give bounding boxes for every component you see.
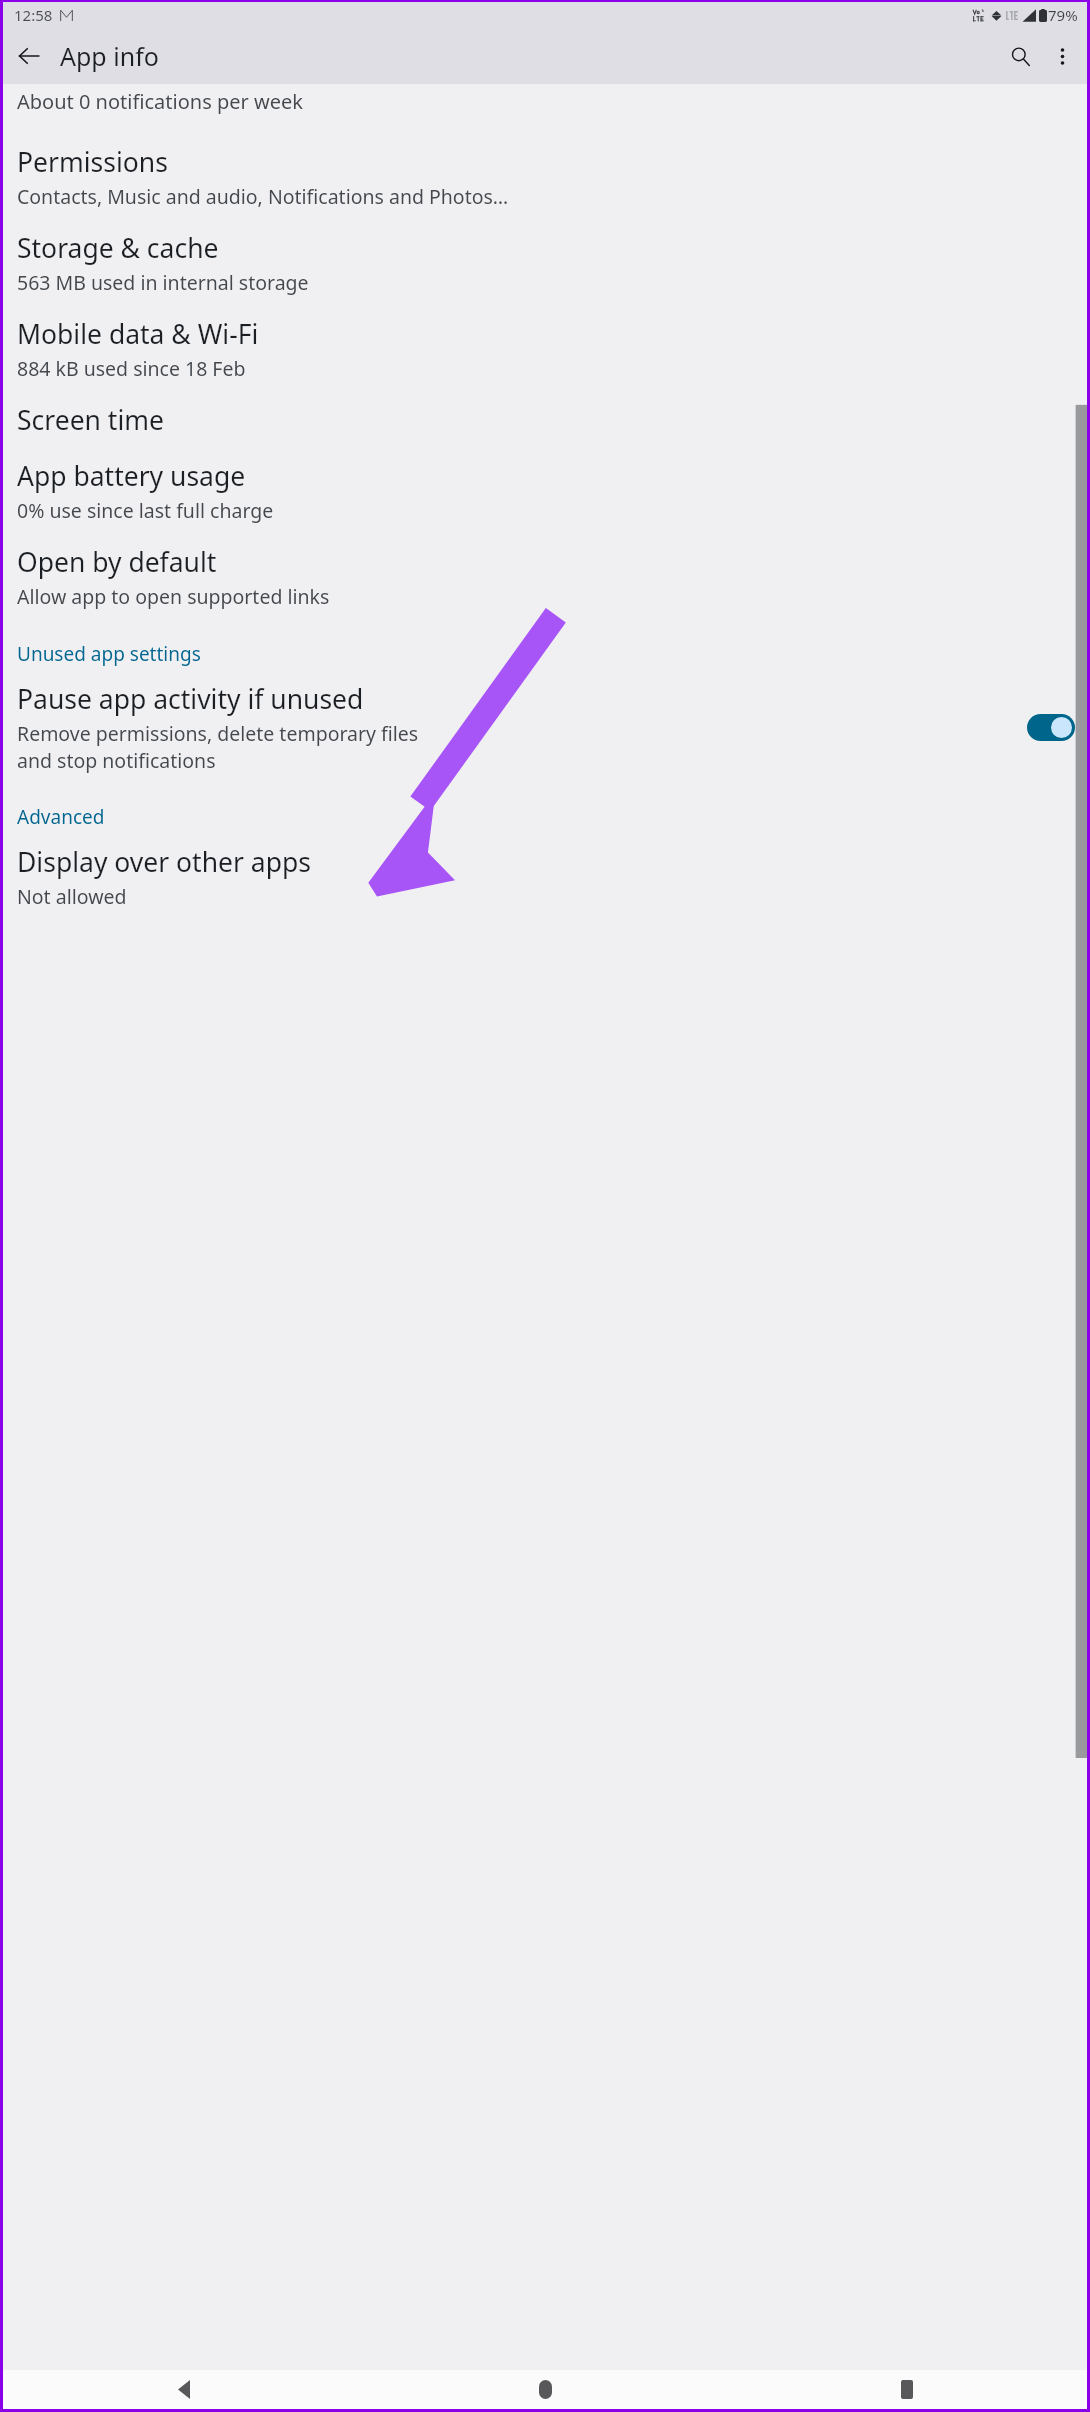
staticText: Storage & cache xyxy=(17,230,219,266)
staticText: 884 kB used since 18 Feb xyxy=(17,355,246,382)
button[interactable]: Pause app activity if unused xyxy=(1027,714,1075,741)
staticText: Pause app activity if unused xyxy=(17,681,364,717)
button[interactable]: Mobile data & Wi-Fi xyxy=(3,306,1087,392)
button[interactable]: Back xyxy=(8,35,50,77)
staticText: Display over other apps xyxy=(17,844,311,880)
button[interactable]: Recent apps xyxy=(726,2370,1087,2409)
staticText: 12:58 xyxy=(14,5,53,25)
staticText: App battery usage xyxy=(17,458,246,494)
staticText: Mobile data & Wi-Fi xyxy=(17,316,259,352)
button[interactable]: Screen time xyxy=(3,392,1087,448)
staticText: Not allowed xyxy=(17,883,127,910)
button[interactable]: Open by default xyxy=(3,534,1087,620)
button[interactable]: App battery usage xyxy=(3,448,1087,534)
button[interactable]: Storage & cache xyxy=(3,220,1087,306)
staticText: Advanced xyxy=(17,804,105,830)
button[interactable]: More options xyxy=(1041,35,1083,77)
staticText: Open by default xyxy=(17,544,217,580)
staticText: 563 MB used in internal storage xyxy=(17,269,309,296)
staticText: Allow app to open supported links xyxy=(17,583,330,610)
staticText: Unused app settings xyxy=(17,641,201,667)
button[interactable]: Display over other apps xyxy=(3,834,1087,920)
staticText: Permissions xyxy=(17,144,168,180)
staticText: Screen time xyxy=(17,402,164,438)
staticText: App info xyxy=(60,39,159,73)
staticText: 0% use since last full charge xyxy=(17,497,274,524)
button[interactable]: Pause app activity if unused xyxy=(3,671,1087,783)
staticText: Contacts, Music and audio, Notifications… xyxy=(17,183,509,210)
button[interactable]: Home xyxy=(365,2370,726,2409)
button[interactable]: Back xyxy=(3,2370,365,2409)
staticText: 79% xyxy=(1048,5,1078,25)
button[interactable]: Permissions xyxy=(3,134,1087,220)
staticText: Remove permissions, delete temporary fil… xyxy=(17,720,419,774)
button[interactable]: Search xyxy=(999,35,1041,77)
staticText: About 0 notifications per week xyxy=(17,88,303,115)
